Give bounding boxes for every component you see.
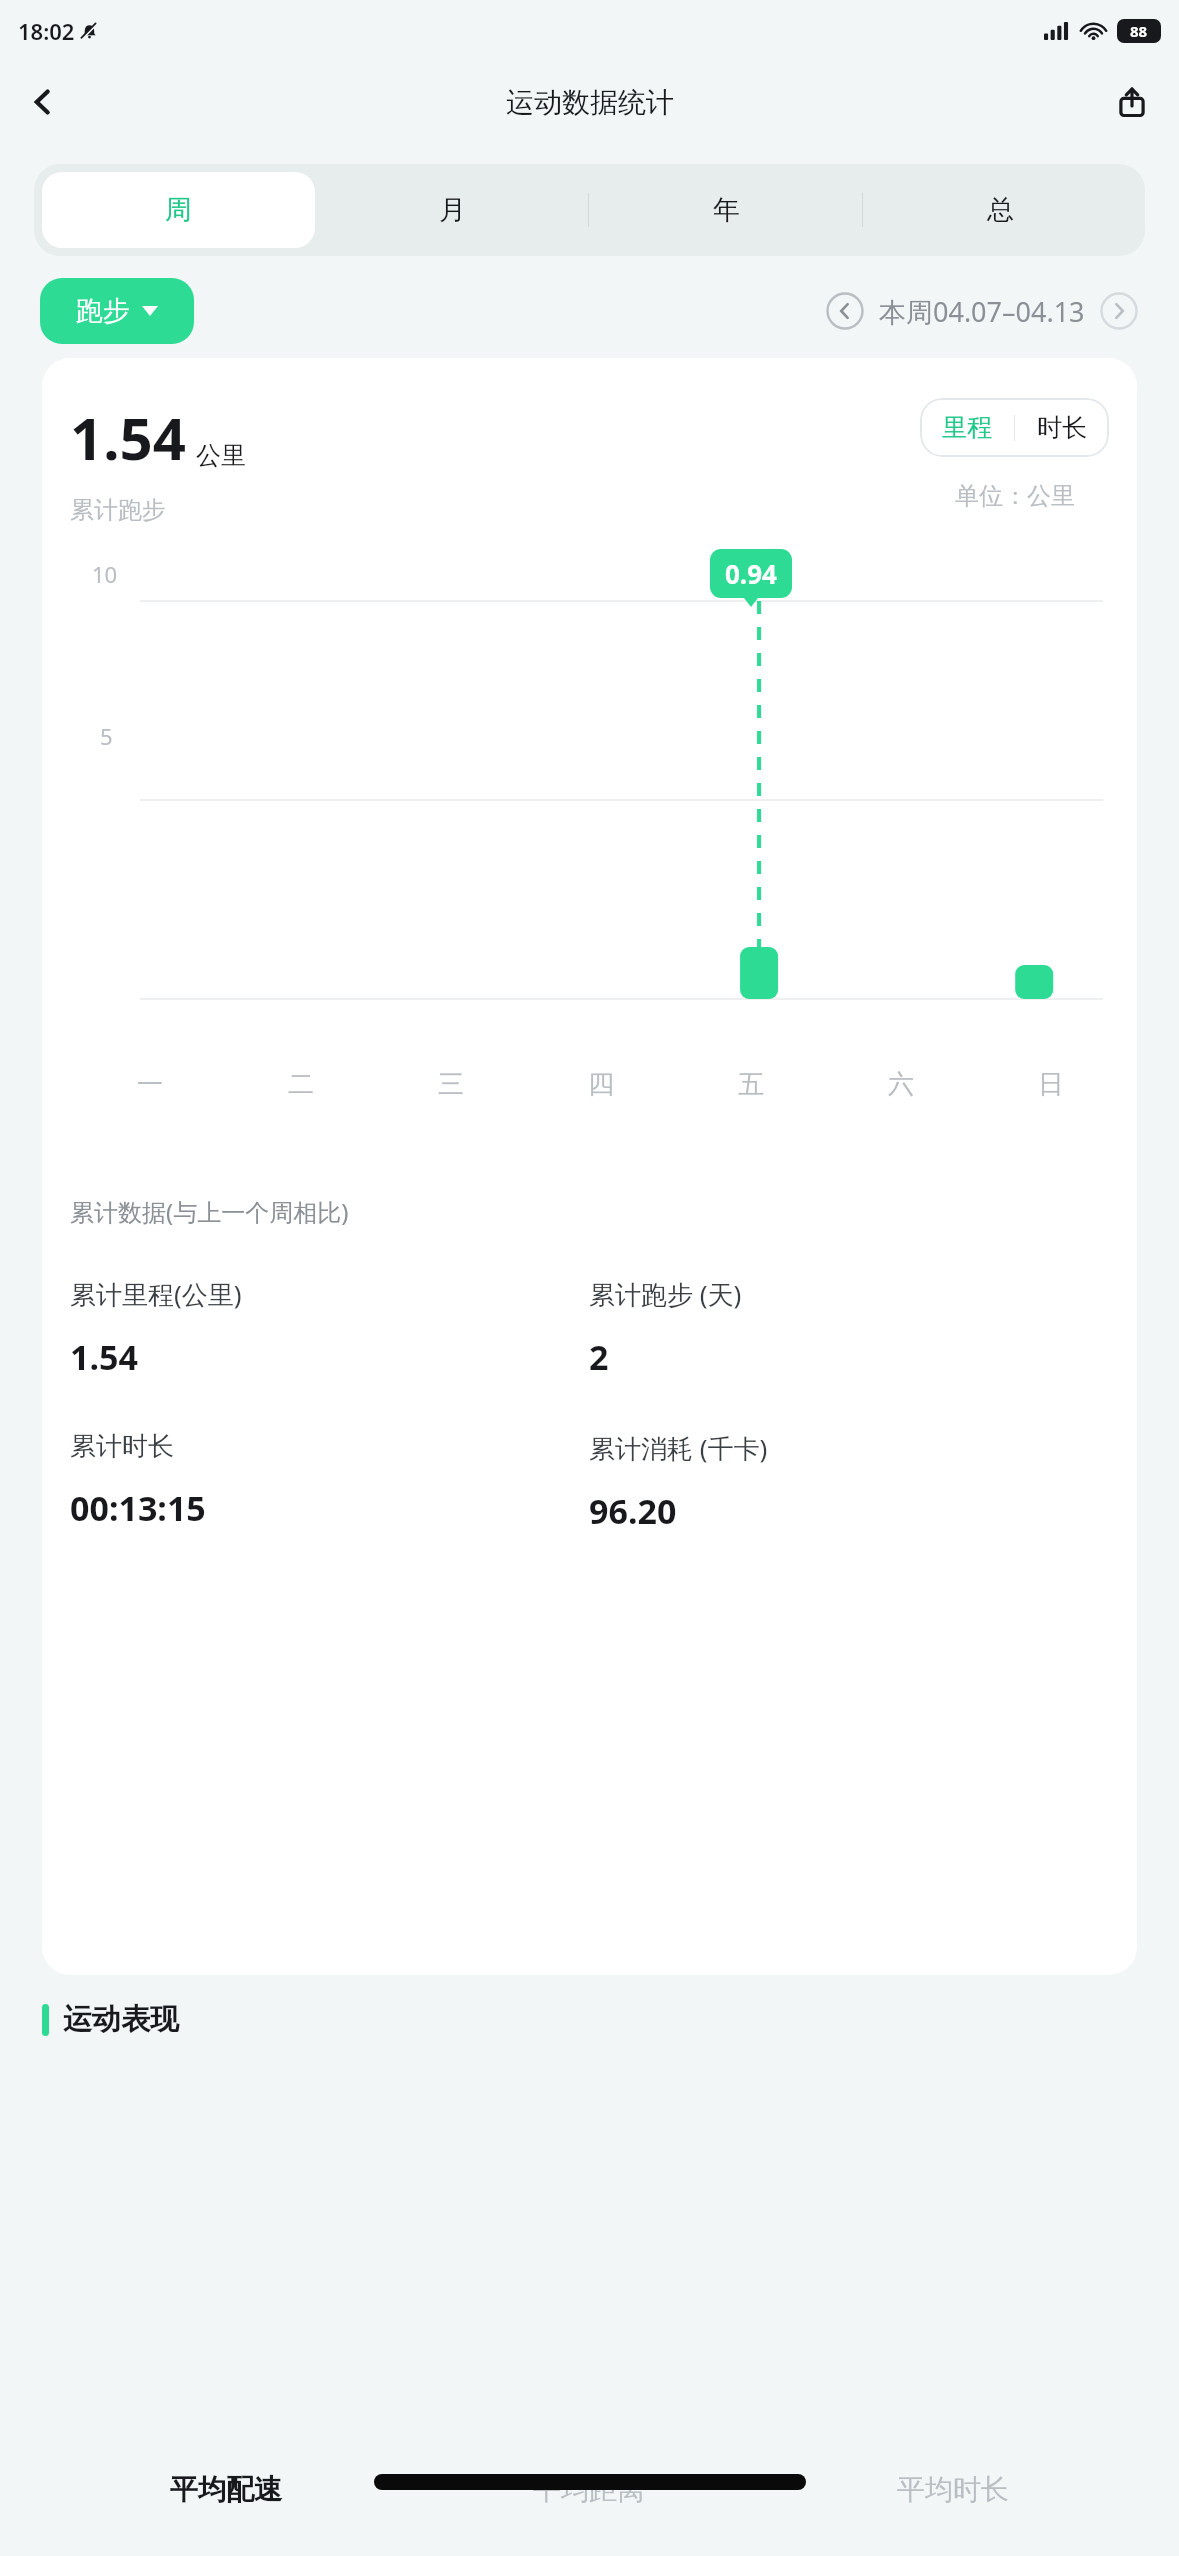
staticText: 时长	[1037, 412, 1087, 443]
button[interactable]: 平均时长	[771, 2454, 1135, 2524]
staticText: 里程	[942, 412, 992, 443]
button[interactable]: Next week	[1099, 291, 1139, 331]
staticText: 单位：公里	[955, 481, 1075, 511]
button[interactable]: 平均距离	[407, 2454, 771, 2524]
staticText: 五	[738, 1068, 764, 1101]
staticText: 平均距离	[533, 2472, 645, 2507]
staticText: 96.20	[589, 1488, 677, 1534]
button[interactable]: 月	[315, 172, 589, 248]
staticText: 1.54	[70, 1334, 138, 1380]
button[interactable]: 总	[863, 172, 1137, 248]
staticText: 10	[92, 559, 118, 589]
staticText: 本周04.07–04.13	[879, 293, 1085, 330]
staticText: 5	[100, 721, 113, 751]
staticText: 累计跑步	[70, 495, 166, 525]
staticText: 累计时长	[70, 1430, 174, 1463]
staticText: 运动表现	[63, 2001, 179, 2038]
staticText: 2	[589, 1334, 609, 1380]
button[interactable]: Share	[1103, 73, 1161, 131]
staticText: 年	[713, 193, 740, 227]
staticText: 总	[987, 193, 1014, 227]
staticText: 月	[439, 193, 466, 227]
button[interactable]: 时长	[1015, 398, 1109, 457]
button[interactable]: 里程	[920, 398, 1014, 457]
staticText: 0.94	[725, 556, 777, 591]
staticText: 88	[1130, 21, 1148, 41]
staticText: 累计数据(与上一个周相比)	[70, 1195, 349, 1228]
staticText: 累计跑步 (天)	[589, 1276, 742, 1312]
button[interactable]: 跑步	[40, 278, 194, 344]
staticText: 运动数据统计	[506, 85, 674, 120]
staticText: 周	[165, 193, 192, 227]
staticText: 累计里程(公里)	[70, 1276, 242, 1312]
staticText: 跑步	[76, 294, 130, 328]
button[interactable]: Previous week	[825, 291, 865, 331]
staticText: 累计消耗 (千卡)	[589, 1430, 768, 1466]
button[interactable]: 年	[589, 172, 863, 248]
button[interactable]: Back	[14, 73, 72, 131]
staticText: 00:13:15	[70, 1485, 206, 1531]
staticText: 公里	[196, 440, 246, 471]
staticText: 三	[438, 1068, 464, 1101]
staticText: 日	[1038, 1068, 1064, 1101]
button[interactable]: 周	[42, 172, 315, 248]
button[interactable]: 平均配速	[44, 2454, 407, 2524]
staticText: 18:02	[18, 16, 75, 46]
staticText: 1.54	[70, 398, 186, 477]
staticText: 平均配速	[170, 2472, 282, 2507]
staticText: 二	[288, 1068, 314, 1101]
staticText: 六	[888, 1068, 914, 1101]
staticText: 四	[588, 1068, 614, 1101]
staticText: 一	[137, 1068, 163, 1101]
staticText: 平均时长	[897, 2472, 1009, 2507]
